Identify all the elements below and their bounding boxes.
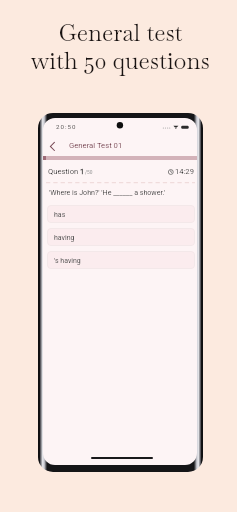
staticText: General test with 50 questions [2,18,237,76]
staticText: Question 1 [48,167,85,176]
staticText: 20:50 [56,123,77,130]
button[interactable]: Back [43,138,60,155]
button[interactable]: has [47,205,195,223]
staticText: has [54,211,66,219]
staticText: 'Where is John?' 'He ______ a shower.' [49,188,165,196]
staticText: having [54,234,75,242]
staticText: 's having [54,257,81,265]
staticText: 14:29 [175,167,194,176]
button[interactable]: having [47,228,195,246]
staticText: General Test 01 [69,141,123,150]
button[interactable]: 's having [47,251,195,269]
staticText: /50 [85,170,93,176]
